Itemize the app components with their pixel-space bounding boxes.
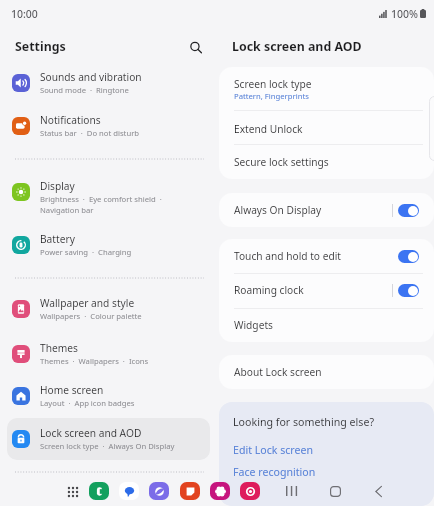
staticText: Roaming clock	[234, 284, 304, 297]
staticText: Edit Lock screen	[233, 443, 313, 457]
button[interactable]: Roaming clock	[219, 273, 434, 308]
staticText: About Lock screen	[234, 366, 322, 379]
button[interactable]: Extend Unlock	[219, 110, 434, 145]
staticText: Wallpaper and style	[40, 297, 135, 310]
button[interactable]: Search	[182, 34, 210, 62]
staticText: Power saving · Charging	[40, 246, 132, 257]
staticText: 10:00	[11, 7, 38, 20]
button[interactable]: Home	[322, 478, 348, 504]
button[interactable]: Toggle	[398, 250, 419, 263]
button[interactable]: Lock screen and AOD	[7, 418, 210, 460]
button[interactable]: Toggle	[398, 204, 419, 217]
staticText: Face recognition	[233, 465, 316, 479]
staticText: Pattern, Fingerprints	[234, 91, 309, 101]
button[interactable]: gallery2	[210, 482, 230, 500]
staticText: Looking for something else?	[233, 415, 375, 429]
button[interactable]: phone	[89, 482, 109, 500]
button[interactable]: Always On Display	[219, 193, 434, 227]
staticText: Screen lock type	[234, 78, 312, 91]
staticText: Layout · App icon badges	[40, 397, 135, 408]
button[interactable]: Display	[7, 166, 210, 218]
staticText: Touch and hold to edit	[234, 250, 341, 263]
button[interactable]: notes	[180, 482, 200, 500]
button[interactable]: Edit Lock screen	[219, 439, 434, 461]
staticText: Widgets	[234, 319, 273, 332]
button[interactable]: Battery	[7, 224, 210, 266]
button[interactable]: Face recognition	[219, 461, 434, 483]
button[interactable]: camera	[240, 482, 260, 500]
button[interactable]: Recents	[278, 478, 304, 504]
button[interactable]: About Lock screen	[219, 355, 434, 389]
staticText: Lock screen and AOD	[232, 39, 362, 55]
staticText: Brightness · Eye comfort shield · Naviga…	[40, 193, 162, 215]
staticText: Sound mode · Ringtone	[40, 84, 129, 95]
staticText: Wallpapers · Colour palette	[40, 310, 142, 321]
button[interactable]: Home screen	[7, 375, 210, 417]
staticText: Battery	[40, 233, 75, 246]
staticText: Always On Display	[234, 204, 322, 217]
button[interactable]: internet	[149, 482, 169, 500]
button[interactable]: Wallpaper and style	[7, 288, 210, 330]
staticText: Sounds and vibration	[40, 71, 142, 84]
button[interactable]: Screen lock type	[219, 67, 434, 110]
staticText: Secure lock settings	[234, 156, 329, 169]
button[interactable]: Touch and hold to edit	[219, 239, 434, 273]
staticText: Lock screen and AOD	[40, 427, 142, 440]
button[interactable]: Sounds and vibration	[7, 62, 210, 104]
staticText: Extend Unlock	[234, 123, 303, 136]
button[interactable]: Apps	[62, 481, 83, 502]
staticText: Notifications	[40, 114, 101, 127]
button[interactable]: message	[119, 482, 139, 500]
staticText: Themes · Wallpapers · Icons	[40, 355, 149, 366]
button[interactable]: Toggle	[398, 284, 419, 297]
button[interactable]: Secure lock settings	[219, 144, 434, 179]
staticText: Screen lock type · Always On Display	[40, 440, 175, 451]
staticText: Status bar · Do not disturb	[40, 127, 140, 138]
staticText: 100%	[391, 7, 418, 20]
staticText: Settings	[15, 39, 66, 55]
button[interactable]: Notifications	[7, 105, 210, 147]
button[interactable]: Back	[365, 478, 391, 504]
staticText: Home screen	[40, 384, 104, 397]
button[interactable]: Themes	[7, 333, 210, 375]
staticText: Themes	[40, 342, 78, 355]
button[interactable]: Widgets	[219, 308, 434, 342]
staticText: Display	[40, 180, 75, 193]
